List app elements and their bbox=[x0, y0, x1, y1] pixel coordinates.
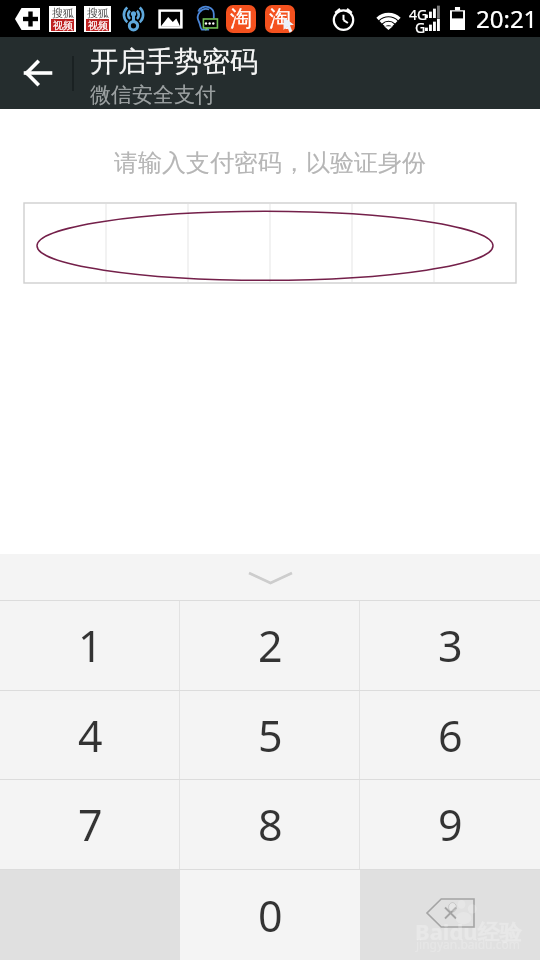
staticText: 6 bbox=[438, 706, 463, 765]
staticText: 淘 bbox=[269, 5, 291, 33]
staticText: 8 bbox=[258, 795, 283, 854]
button[interactable]: 5 bbox=[180, 691, 360, 779]
button[interactable]: 2 bbox=[180, 601, 360, 690]
staticText: 5 bbox=[258, 706, 283, 765]
staticText: 视频 bbox=[53, 19, 73, 31]
button[interactable]: 0 bbox=[180, 870, 360, 960]
button[interactable]: 9 bbox=[360, 780, 540, 869]
staticText: 微信安全支付 bbox=[90, 82, 216, 108]
staticText: 淘 bbox=[230, 5, 252, 33]
button[interactable]: Back bbox=[0, 37, 72, 109]
staticText: 开启手势密码 bbox=[90, 44, 258, 79]
staticText: 搜狐 bbox=[87, 6, 109, 20]
staticText: 4G bbox=[409, 5, 428, 24]
staticText: 0 bbox=[258, 886, 283, 945]
staticText: Baidu经验 bbox=[415, 916, 522, 946]
staticText: 请输入支付密码，以验证身份 bbox=[0, 148, 540, 178]
staticText: 4 bbox=[78, 706, 103, 765]
staticText: jingyan.baidu.com bbox=[416, 936, 520, 952]
staticText: 9 bbox=[438, 795, 463, 854]
staticText: 2 bbox=[258, 616, 283, 675]
button[interactable]: 3 bbox=[360, 601, 540, 690]
staticText: 视频 bbox=[88, 19, 108, 31]
staticText: G bbox=[415, 18, 426, 37]
button[interactable]: 8 bbox=[180, 780, 360, 869]
staticText: 20:21 bbox=[476, 2, 538, 35]
staticText: 1 bbox=[78, 616, 103, 675]
button[interactable]: 7 bbox=[0, 780, 180, 869]
button[interactable]: 1 bbox=[0, 601, 180, 690]
button[interactable]: Delete bbox=[360, 870, 540, 960]
button[interactable]: 4 bbox=[0, 691, 180, 779]
staticText: 搜狐 bbox=[52, 6, 74, 20]
staticText: 3 bbox=[438, 616, 463, 675]
button[interactable]: 6 bbox=[360, 691, 540, 779]
staticText: 7 bbox=[78, 795, 103, 854]
